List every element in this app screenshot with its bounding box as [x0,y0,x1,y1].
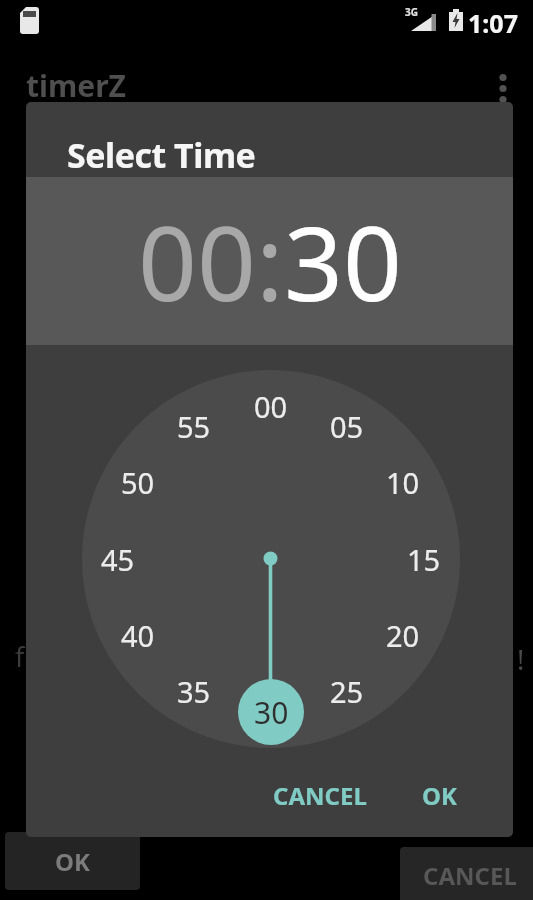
button[interactable]: 15 [384,537,464,581]
button[interactable]: CANCEL [250,773,390,817]
button[interactable] [492,70,514,106]
staticText: 15 [407,540,441,579]
staticText: 30 [254,692,289,733]
button[interactable]: 25 [307,669,387,713]
staticText: CANCEL [423,859,517,892]
staticText: 55 [177,407,211,446]
button[interactable]: 00 [231,384,311,428]
button[interactable]: 50 [98,460,178,504]
button[interactable]: 35 [154,669,234,713]
button[interactable]: OK [5,832,140,890]
staticText: 1:07 [468,6,518,40]
staticText: 3G [405,5,418,19]
staticText: 05 [330,407,364,446]
staticText: 10 [386,463,420,502]
staticText: 40 [121,616,155,655]
button[interactable]: OK [399,773,479,817]
staticText: 00 [254,387,288,426]
staticText: 35 [177,672,211,711]
button[interactable]: 20 [363,613,443,657]
button[interactable]: 30 [238,679,304,745]
staticText: 50 [121,463,155,502]
staticText: 45 [101,540,135,579]
staticText: 00 [138,191,256,331]
staticText: OK [422,779,457,812]
button[interactable]: 10 [363,460,443,504]
staticText: 20 [386,616,420,655]
staticText: timerZ [26,65,126,106]
staticText: 30 [284,191,402,331]
button[interactable]: 40 [98,613,178,657]
button[interactable]: 45 [78,537,158,581]
button[interactable]: CANCEL [400,847,533,900]
staticText: ! [517,641,525,678]
staticText: 25 [330,672,364,711]
staticText: OK [55,845,90,878]
staticText: f [15,638,25,675]
button[interactable]: 55 [154,404,234,448]
staticText: : [256,191,284,331]
button[interactable]: 05 [307,404,387,448]
staticText: CANCEL [273,779,367,812]
staticText: Select Time [67,132,256,178]
